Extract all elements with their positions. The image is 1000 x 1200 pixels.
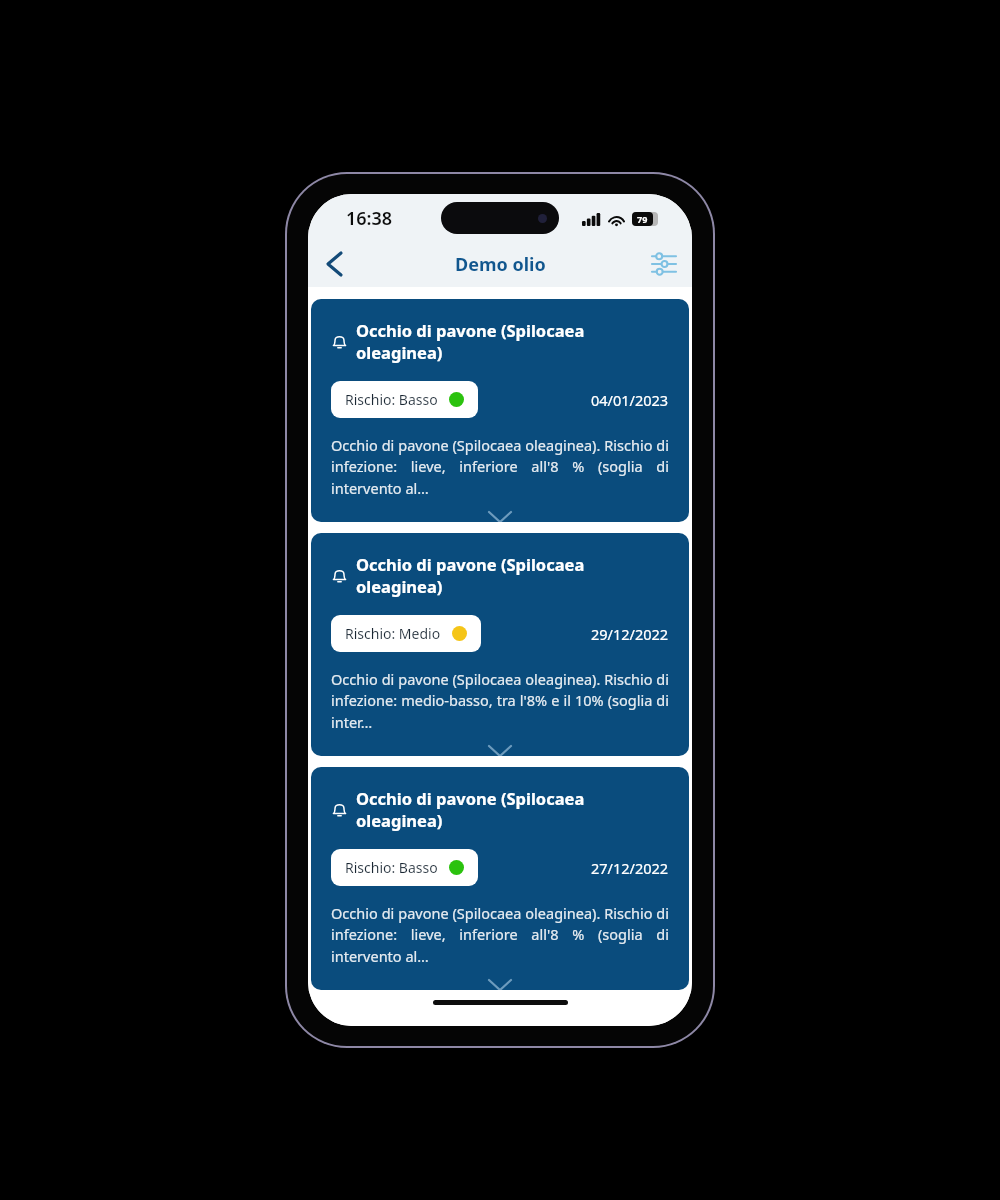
staticText: Occhio di pavone (Spilocaea oleaginea). … bbox=[331, 669, 669, 733]
staticText: Occhio di pavone (Spilocaea oleaginea) bbox=[356, 319, 669, 363]
button[interactable]: Rischio: Basso bbox=[331, 381, 478, 418]
staticText: 27/12/2022 bbox=[591, 858, 669, 878]
button[interactable]: Occhio di pavone (Spilocaea oleaginea) bbox=[311, 299, 689, 522]
button[interactable]: Filters bbox=[643, 243, 685, 285]
staticText: 04/01/2023 bbox=[591, 390, 669, 410]
staticText: 29/12/2022 bbox=[591, 624, 669, 644]
staticText: Rischio: Medio bbox=[345, 624, 441, 643]
staticText: 79 bbox=[637, 213, 648, 225]
button[interactable]: Rischio: Basso bbox=[331, 849, 478, 886]
staticText: Occhio di pavone (Spilocaea oleaginea) bbox=[356, 553, 669, 597]
staticText: Rischio: Basso bbox=[345, 858, 438, 877]
staticText: Demo olio bbox=[455, 252, 546, 277]
button[interactable]: Occhio di pavone (Spilocaea oleaginea) bbox=[311, 533, 689, 756]
button[interactable]: Back bbox=[313, 243, 355, 285]
button[interactable]: Occhio di pavone (Spilocaea oleaginea) bbox=[311, 767, 689, 990]
staticText: 16:38 bbox=[346, 206, 393, 231]
staticText: Occhio di pavone (Spilocaea oleaginea). … bbox=[331, 435, 669, 499]
staticText: Occhio di pavone (Spilocaea oleaginea) bbox=[356, 787, 669, 831]
staticText: Occhio di pavone (Spilocaea oleaginea). … bbox=[331, 903, 669, 967]
staticText: Rischio: Basso bbox=[345, 390, 438, 409]
button[interactable]: Rischio: Medio bbox=[331, 615, 481, 652]
